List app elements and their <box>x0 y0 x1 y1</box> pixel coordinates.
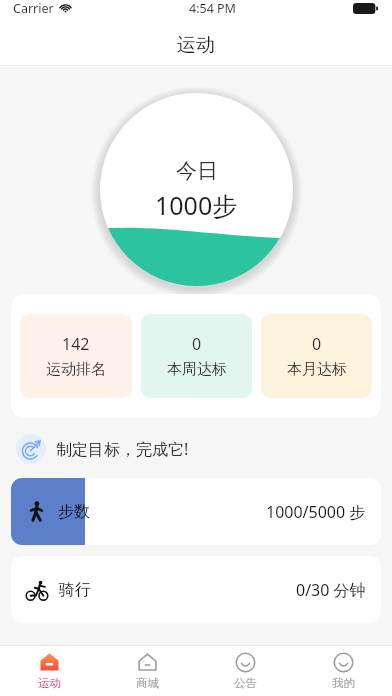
button[interactable]: 0 <box>261 314 372 398</box>
staticText: 商城 <box>136 676 159 690</box>
button[interactable]: 142 <box>20 314 132 398</box>
staticText: 运动 <box>177 33 215 57</box>
staticText: 1000步 <box>155 188 238 222</box>
button[interactable]: 制定目标，完成它! <box>16 434 376 464</box>
staticText: 0 <box>192 333 202 355</box>
staticText: 骑行 <box>59 580 91 600</box>
button[interactable]: 0 <box>141 314 252 398</box>
staticText: 本周达标 <box>167 360 227 379</box>
staticText: 0/30 分钟 <box>296 579 366 601</box>
button[interactable]: 步数 <box>11 478 381 545</box>
staticText: 运动排名 <box>46 360 106 379</box>
staticText: Carrier <box>13 0 54 17</box>
staticText: 4:54 PM <box>189 0 236 17</box>
button[interactable]: 商城 <box>98 646 196 696</box>
button[interactable]: 公告 <box>196 646 294 696</box>
staticText: 运动 <box>38 676 61 690</box>
staticText: 0 <box>312 333 322 355</box>
staticText: 142 <box>62 333 90 355</box>
button[interactable]: 我的 <box>294 646 392 696</box>
button[interactable]: 骑行 <box>11 556 381 623</box>
staticText: 步数 <box>58 502 90 522</box>
staticText: 今日 <box>176 158 218 184</box>
staticText: 1000/5000 步 <box>266 501 366 523</box>
button[interactable]: 运动 <box>0 646 98 696</box>
staticText: 制定目标，完成它! <box>56 438 189 460</box>
staticText: 公告 <box>234 676 257 690</box>
staticText: 本月达标 <box>287 360 347 379</box>
staticText: 我的 <box>332 676 355 690</box>
